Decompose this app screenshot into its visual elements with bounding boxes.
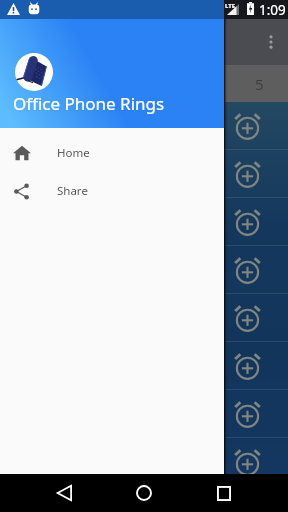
button[interactable]: Add alarm	[0, 198, 288, 246]
button[interactable]: Add alarm	[0, 486, 288, 512]
button[interactable]: Add alarm	[0, 438, 288, 486]
button[interactable]: Add alarm	[0, 294, 288, 342]
button[interactable]: Add alarm	[0, 102, 288, 150]
button[interactable]: Back	[45, 474, 83, 512]
staticText: Share	[57, 183, 88, 199]
button[interactable]: More options	[256, 27, 286, 57]
staticText: LTE	[225, 2, 236, 10]
staticText: 5	[255, 74, 264, 94]
button[interactable]: Add alarm	[0, 150, 288, 198]
button[interactable]: Add alarm	[0, 342, 288, 390]
button[interactable]: Home	[0, 134, 224, 172]
button[interactable]: Home	[125, 474, 163, 512]
button[interactable]: Add alarm	[0, 246, 288, 294]
button[interactable]: Add alarm	[0, 390, 288, 438]
button[interactable]: Recents	[205, 474, 243, 512]
staticText: 1:09	[259, 1, 286, 19]
staticText: Office Phone Rings	[13, 92, 165, 115]
button[interactable]: Share	[0, 172, 224, 210]
staticText: Home	[57, 145, 90, 161]
